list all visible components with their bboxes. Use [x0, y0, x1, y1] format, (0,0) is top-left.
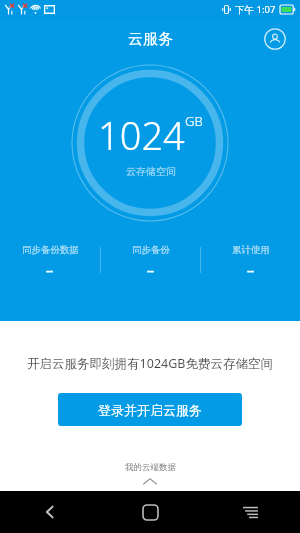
staticText: 云存储空间 [126, 165, 176, 178]
staticText: 云服务 [128, 30, 173, 49]
button[interactable]: 累计使用 [201, 244, 300, 277]
staticText: 开启云服务即刻拥有1024GB免费云存储空间 [27, 355, 273, 372]
staticText: -- [147, 262, 155, 277]
staticText: 登录并开启云服务 [98, 402, 202, 418]
staticText: 累计使用 [232, 244, 270, 256]
button[interactable]: Account [260, 24, 290, 54]
staticText: GB [185, 112, 203, 130]
button[interactable]: 我的云端数据 [0, 462, 300, 491]
staticText: -- [247, 262, 255, 277]
button[interactable]: Back [0, 491, 100, 533]
staticText: 下午 1:07 [235, 3, 276, 16]
button[interactable]: 同步备份数据 [0, 244, 100, 277]
staticText: 我的云端数据 [125, 462, 176, 473]
staticText: 同步备份 [132, 244, 170, 256]
button[interactable]: 登录并开启云服务 [58, 393, 242, 426]
staticText: -- [46, 262, 54, 277]
staticText: 1024 [98, 109, 185, 161]
button[interactable]: Menu [200, 491, 300, 533]
button[interactable]: 同步备份 [101, 244, 200, 277]
staticText: 同步备份数据 [22, 244, 79, 256]
button[interactable]: Home [100, 491, 200, 533]
